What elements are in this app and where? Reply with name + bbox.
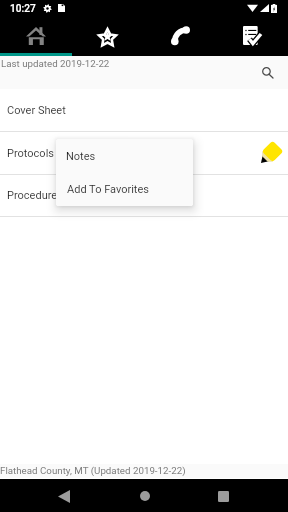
button[interactable]: Add To Favorites: [56, 172, 193, 205]
button[interactable]: Back: [47, 479, 80, 512]
button[interactable]: Cover Sheet: [0, 89, 288, 131]
staticText: Procedures: [7, 189, 63, 202]
button[interactable]: Notes: [56, 139, 193, 172]
staticText: Add To Favorites: [67, 183, 149, 196]
button[interactable]: Favorites tab: [72, 17, 144, 56]
button[interactable]: Procedures: [0, 174, 288, 216]
button[interactable]: Checklists tab: [216, 17, 288, 56]
staticText: Flathead County, MT (Updated 2019-12-22): [0, 465, 186, 476]
button[interactable]: Home: [128, 479, 161, 512]
staticText: Notes: [66, 150, 96, 163]
button[interactable]: Protocols: [0, 131, 288, 174]
button[interactable]: Search: [256, 61, 280, 85]
button[interactable]: Call tab: [144, 17, 216, 56]
staticText: Protocols: [7, 147, 54, 160]
button[interactable]: Home tab: [0, 17, 72, 56]
staticText: Cover Sheet: [7, 104, 66, 117]
staticText: Last updated 2019-12-22: [1, 58, 110, 69]
staticText: 10:27: [10, 3, 36, 15]
button[interactable]: Recent apps: [207, 479, 240, 512]
